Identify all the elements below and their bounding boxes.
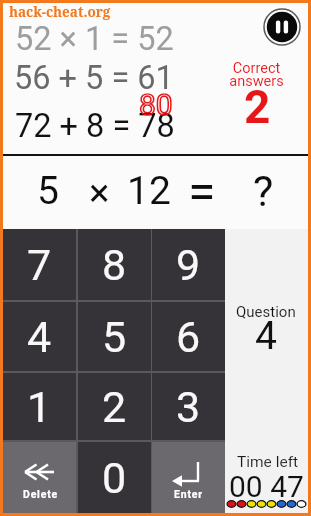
button[interactable]: 3 <box>152 373 225 440</box>
staticText: 12 <box>127 168 171 214</box>
staticText: 3 <box>176 382 201 432</box>
button[interactable]: 6 <box>152 302 225 371</box>
staticText: 9 <box>176 240 201 290</box>
button[interactable]: 2 <box>78 373 151 440</box>
staticText: ? <box>253 166 274 216</box>
staticText: × <box>89 170 110 215</box>
button[interactable] <box>152 442 225 513</box>
staticText: 5 <box>102 312 127 362</box>
staticText: 2 <box>102 382 127 432</box>
staticText: 4 <box>27 312 52 362</box>
button[interactable]: 0 <box>78 442 151 513</box>
staticText: = <box>188 163 216 215</box>
button[interactable]: 1 <box>3 373 76 440</box>
staticText: Question <box>236 303 296 321</box>
button[interactable]: 5 <box>78 302 151 371</box>
staticText: 2 <box>244 80 271 134</box>
staticText: Enter <box>174 488 203 500</box>
staticText: hack-cheat.org <box>9 3 111 21</box>
staticText: 0 <box>102 453 127 503</box>
button[interactable] <box>262 7 302 47</box>
button[interactable]: 8 <box>78 229 151 300</box>
button[interactable]: 7 <box>3 229 76 300</box>
button[interactable]: 9 <box>152 229 225 300</box>
staticText: 80 <box>139 87 173 122</box>
staticText: 7 <box>27 240 52 290</box>
staticText: 5 <box>37 168 59 214</box>
button[interactable]: 4 <box>3 302 76 371</box>
staticText: 00 47 <box>229 469 304 499</box>
staticText: 52 × 1 = 52 <box>15 20 174 58</box>
button[interactable] <box>3 442 76 513</box>
staticText: Time left <box>237 453 299 471</box>
staticText: 72 + 8 = 78 <box>15 107 175 145</box>
staticText: 8 <box>102 240 127 290</box>
staticText: 1 <box>27 382 52 432</box>
staticText: 6 <box>176 312 201 362</box>
staticText: 4 <box>255 313 277 359</box>
staticText: Delete <box>23 488 58 500</box>
staticText: 56 + 5 = 61 <box>14 59 174 97</box>
staticText: Correct answers <box>229 60 284 90</box>
